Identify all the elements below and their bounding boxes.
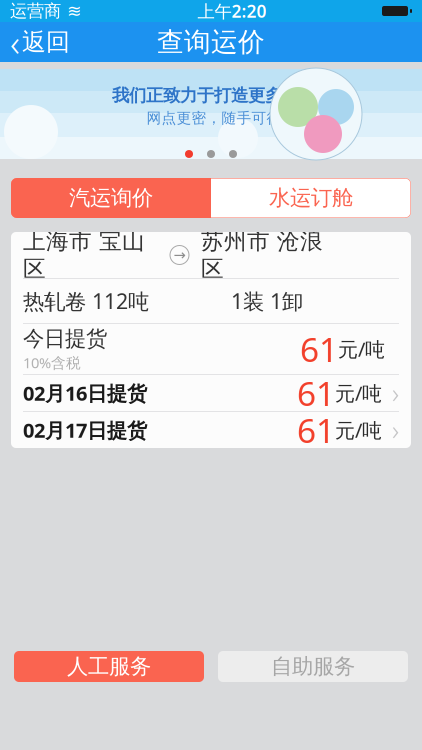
button[interactable]: 汽运询价 [11, 178, 211, 218]
staticText: 61 [297, 371, 335, 415]
staticText: 元/吨 [335, 380, 382, 406]
staticText: › [392, 375, 399, 411]
staticText: 02月16日提货 [23, 380, 147, 406]
staticText: 元/吨 [335, 417, 382, 443]
staticText: 热轧卷 112吨 [23, 287, 149, 315]
staticText: 水运订舱 [269, 185, 353, 211]
staticText: 网点更密，随手可得 [146, 109, 281, 127]
staticText: › [392, 412, 399, 448]
staticText: 上海市 宝山区 [23, 227, 145, 283]
button[interactable]: 自助服务 [218, 651, 408, 682]
staticText: 02月17日提货 [23, 417, 147, 443]
button[interactable]: 人工服务 [14, 651, 204, 682]
staticText: → [173, 247, 185, 263]
staticText: 元/吨 [338, 336, 385, 362]
staticText: ≋ [67, 1, 82, 21]
staticText: ‹ [10, 17, 20, 67]
staticText: 人工服务 [67, 653, 151, 680]
staticText: 自助服务 [271, 653, 355, 680]
staticText: 运营商 [10, 0, 61, 22]
staticText: 61 [300, 327, 338, 371]
button[interactable]: 水运订舱 [211, 178, 411, 218]
staticText: 汽运询价 [69, 185, 153, 211]
button[interactable]: ‹ [0, 22, 80, 62]
staticText: 我们正致力于打造更多专线 [112, 85, 316, 106]
button[interactable]: 02月17日提货 [11, 412, 411, 448]
staticText: 查询运价 [157, 26, 265, 58]
staticText: 今日提货 [23, 326, 107, 352]
button[interactable]: 02月16日提货 [11, 375, 411, 411]
staticText: 1装 1卸 [231, 287, 303, 315]
staticText: 返回 [22, 27, 70, 57]
staticText: 61 [297, 408, 335, 452]
staticText: 苏州市 沧浪区 [201, 227, 323, 283]
staticText: 上午2:20 [197, 0, 266, 22]
staticText: 10%含税 [23, 353, 81, 372]
